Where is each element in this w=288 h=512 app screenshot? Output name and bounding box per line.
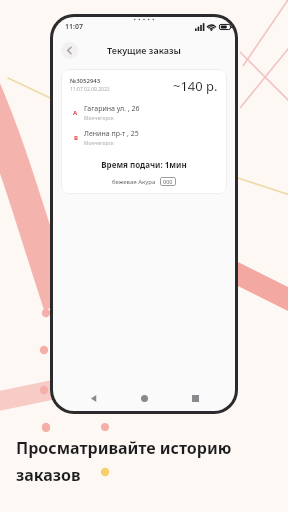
staticText: B <box>74 134 78 142</box>
staticText: Текущие заказы <box>107 44 181 56</box>
button[interactable]: Домой <box>134 388 154 408</box>
staticText: 11:07 02.09.2022 <box>70 86 110 93</box>
staticText: Время подачи: 1мин <box>70 159 218 170</box>
staticText: бежевая Акура <box>112 178 156 186</box>
staticText: Мончегорск <box>84 115 114 122</box>
staticText: ~140 p. <box>173 77 218 95</box>
staticText: заказов <box>16 464 81 486</box>
staticText: 11:07 <box>65 22 83 32</box>
button[interactable]: Назад <box>84 388 104 408</box>
staticText: №3052943 <box>70 77 101 85</box>
staticText: Гагарина ул. , 26 <box>84 104 140 114</box>
staticText: Мончегорск <box>84 140 114 147</box>
staticText: 000 <box>163 178 173 185</box>
button[interactable]: Назад <box>61 42 78 59</box>
staticText: Ленина пр-т , 25 <box>84 129 139 139</box>
staticText: Просматривайте историю <box>16 437 232 459</box>
staticText: A <box>73 109 78 117</box>
button[interactable]: Недавние <box>185 388 205 408</box>
button[interactable]: №3052943 <box>61 69 227 194</box>
